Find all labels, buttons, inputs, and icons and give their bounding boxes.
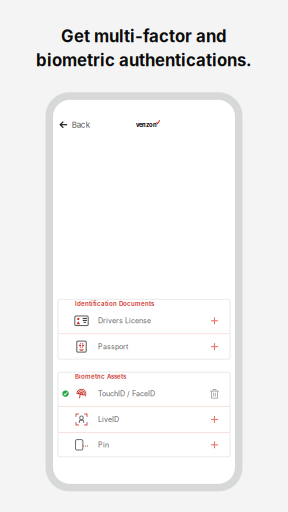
staticText: Get multi-factor and xyxy=(61,26,227,46)
button[interactable]: TouchID / FaceID xyxy=(58,381,230,406)
staticText: Passport xyxy=(98,342,128,351)
button[interactable]: Back xyxy=(53,117,90,133)
staticText: Drivers License xyxy=(98,316,151,325)
staticText: Biometric Assets xyxy=(75,373,126,380)
staticText: Pin xyxy=(98,441,109,449)
staticText: Identification Documents xyxy=(75,300,154,307)
staticText: TouchID / FaceID xyxy=(98,389,155,398)
button[interactable]: LiveID xyxy=(58,407,230,432)
button[interactable]: Passport xyxy=(58,334,230,359)
staticText: Back xyxy=(72,120,90,130)
staticText: LiveID xyxy=(98,415,119,424)
button[interactable]: Pin xyxy=(58,433,230,457)
staticText: verizon xyxy=(136,121,157,128)
button[interactable]: Drivers License xyxy=(58,308,230,333)
staticText: biometric authentications. xyxy=(36,50,252,70)
